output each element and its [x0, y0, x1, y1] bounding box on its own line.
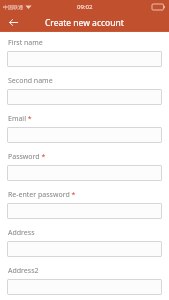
button[interactable]: Second name — [7, 76, 162, 114]
button[interactable]: Re-enter password * — [7, 190, 162, 228]
button[interactable]: Address — [7, 228, 162, 266]
staticText: Re-enter password * — [8, 190, 76, 200]
button[interactable]: Back — [0, 13, 26, 32]
button[interactable]: Address2 — [7, 266, 162, 300]
button[interactable]: Email * — [7, 114, 162, 152]
staticText: Create new account — [45, 17, 124, 29]
staticText: Email * — [8, 114, 32, 124]
staticText: 09:02 — [77, 3, 93, 11]
staticText: Password * — [8, 152, 46, 162]
staticText: 中国联通 — [3, 4, 23, 10]
staticText: First name — [8, 38, 43, 48]
button[interactable]: First name — [7, 38, 162, 76]
staticText: Address2 — [8, 266, 39, 276]
button[interactable]: Password * — [7, 152, 162, 190]
staticText: Address — [8, 228, 35, 238]
staticText: Second name — [8, 76, 53, 86]
